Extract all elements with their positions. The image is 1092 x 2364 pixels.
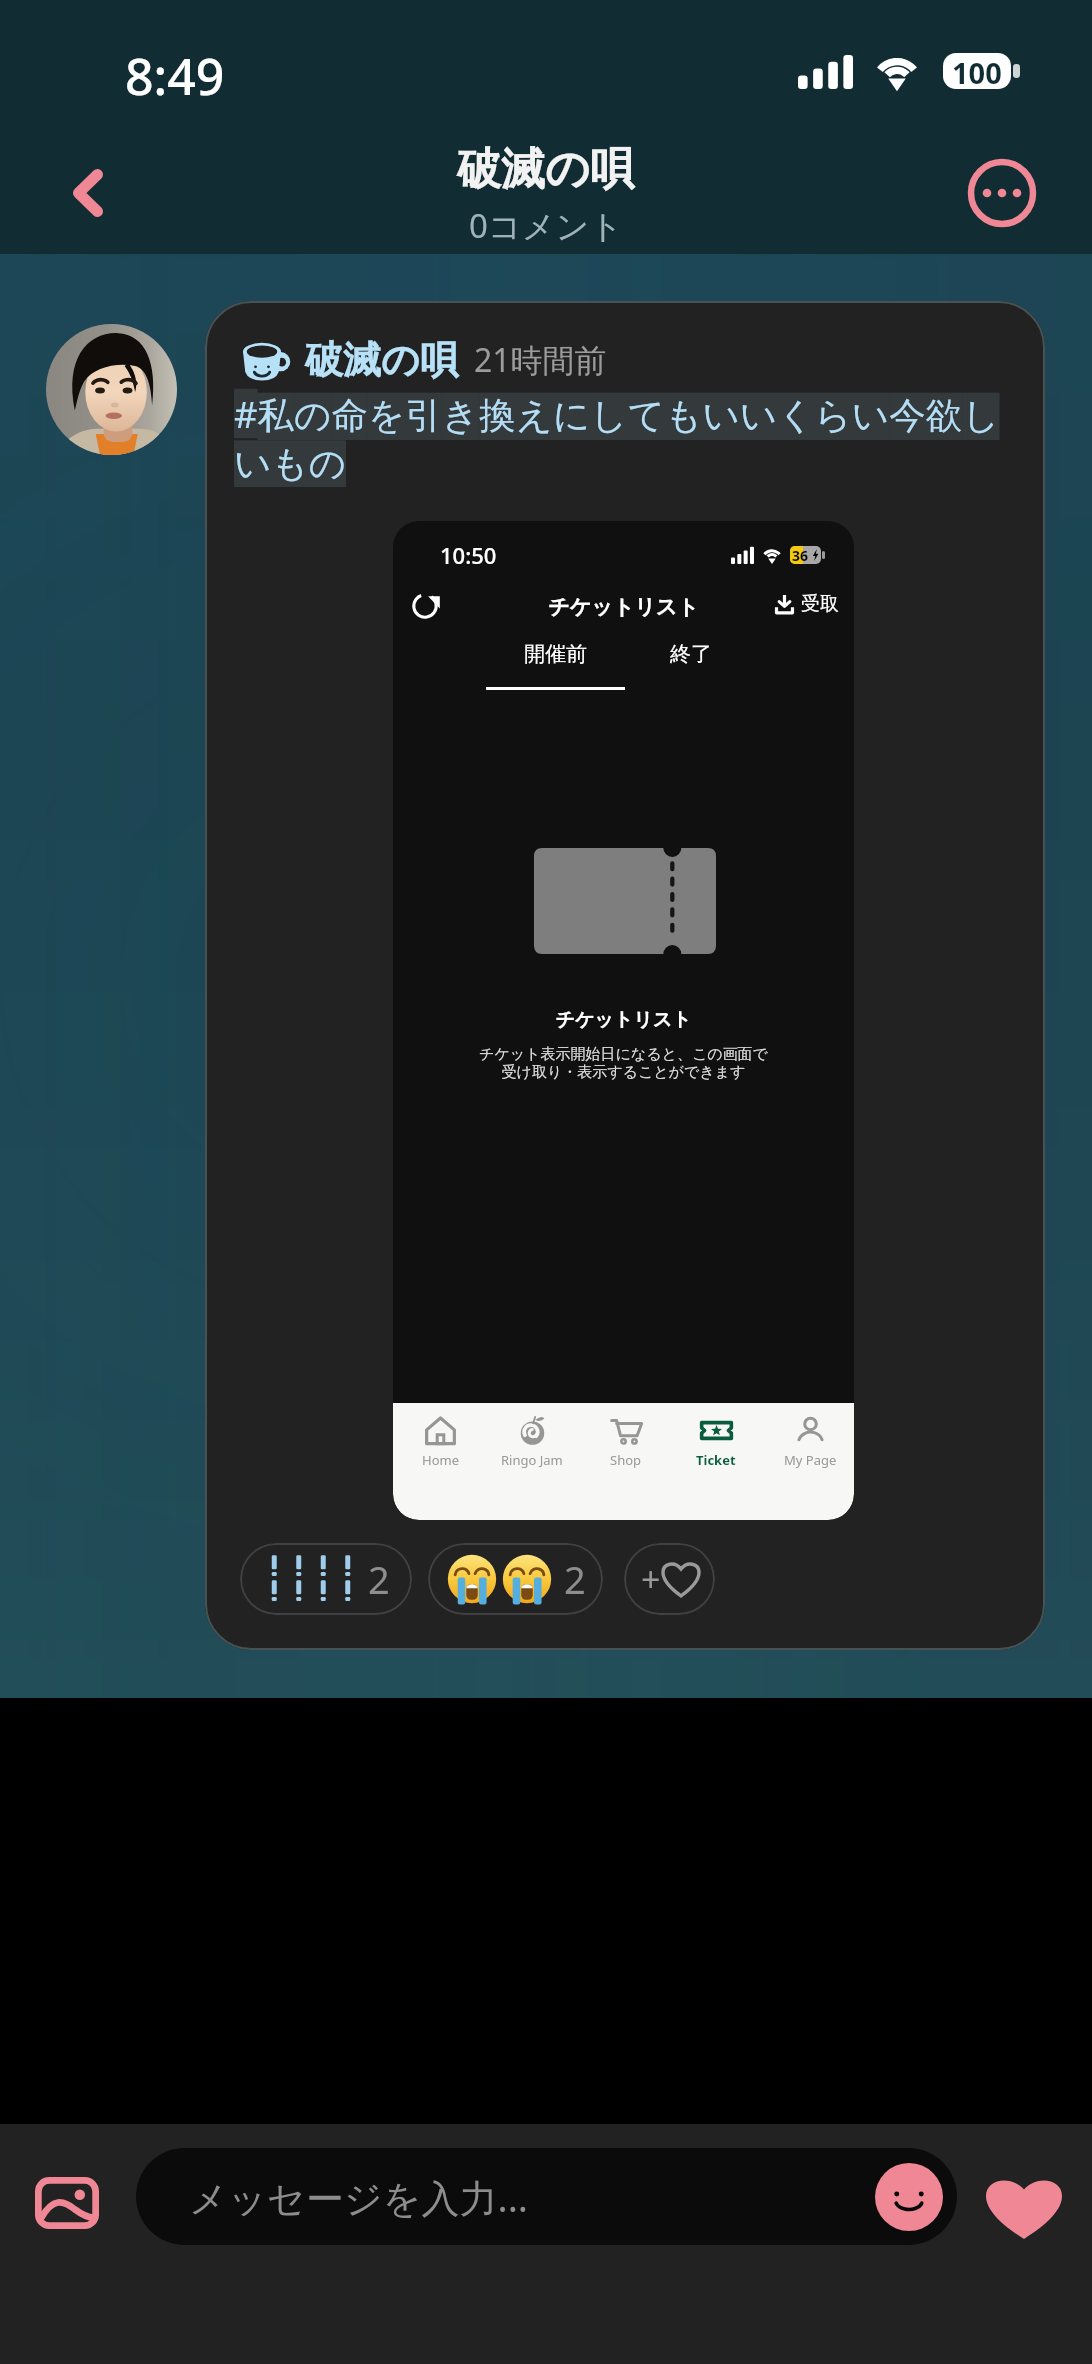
button[interactable]: More options [954,145,1050,241]
button[interactable]: Back [44,149,132,237]
staticText: チケット表示開始日になると、この画面で 受け取り・表示することができます [393,1045,854,1081]
staticText: #私の命を引き換えにしてもいいくらい今欲しいもの [234,389,1034,487]
staticText: 36 [792,546,809,564]
button[interactable]: Attach image [7,2143,127,2263]
button[interactable]: メッセージを入力... [136,2148,957,2245]
button[interactable]: 受取 [775,592,839,616]
staticText: 100 [952,53,1002,89]
button[interactable]: 終了 [670,641,712,667]
staticText: 破滅の唄 [457,142,635,197]
staticText: Shop [610,1451,642,1469]
staticText: 8:49 [125,42,225,110]
staticText: 開催前 [524,641,587,667]
staticText: 21時間前 [474,338,607,382]
staticText: 0コメント [469,203,623,248]
button[interactable]: My Page [765,1414,854,1469]
staticText: My Page [784,1451,837,1469]
button[interactable]: Home [395,1414,485,1469]
staticText: 終了 [670,641,712,667]
button[interactable]: 2 [428,1543,603,1615]
button[interactable]: + [624,1543,715,1615]
button[interactable]: 破滅の唄 [205,301,1045,1650]
button[interactable]: Emoji [875,2163,943,2231]
button[interactable]: Refresh [401,581,449,629]
staticText: Home [422,1451,459,1469]
staticText: 10:50 [440,540,497,570]
staticText: チケットリスト [393,594,854,620]
staticText: + [641,1556,661,1602]
button[interactable]: 2 [240,1543,412,1615]
staticText: Ticket [696,1451,736,1469]
staticText: メッセージを入力... [189,2171,529,2223]
staticText: Ringo Jam [501,1451,563,1469]
button[interactable]: Like [964,2148,1084,2268]
button[interactable]: 開催前 [524,641,587,667]
staticText: 2 [564,1553,586,1605]
button[interactable]: Shop [581,1414,671,1469]
staticText: チケットリスト [393,1008,854,1032]
button[interactable]: Ringo Jam [487,1414,577,1469]
staticText: 2 [368,1553,390,1605]
staticText: 受取 [801,592,839,616]
staticText: 破滅の唄 [305,336,458,384]
button[interactable]: Ticket [671,1414,761,1469]
button[interactable]: Profile picture [46,324,177,455]
